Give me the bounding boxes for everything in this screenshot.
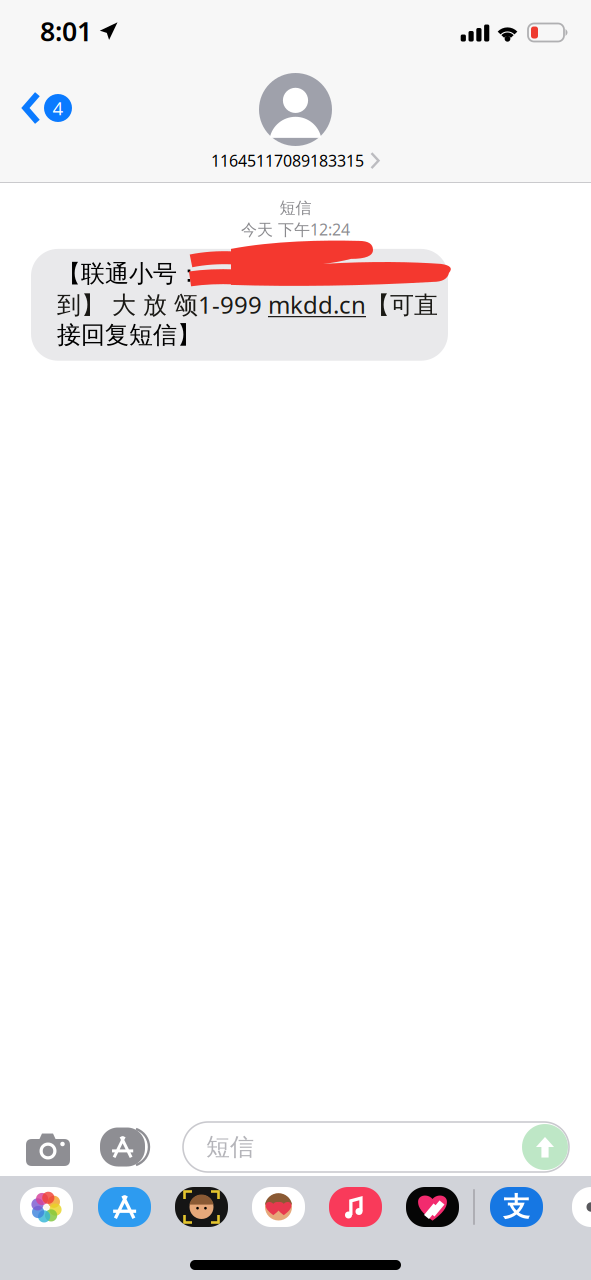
button[interactable]: More apps [543, 1187, 591, 1227]
staticText: 今天 下午12:24 [241, 219, 350, 240]
button[interactable]: Back [0, 81, 84, 135]
staticText: 8:01 [40, 13, 92, 49]
button[interactable]: Send [522, 1124, 569, 1170]
button[interactable]: Photos [20, 1187, 73, 1227]
button[interactable]: Apps [73, 1127, 158, 1166]
staticText: 11645117089183315 [211, 150, 364, 171]
button[interactable]: 11645117089183315 [211, 62, 380, 171]
button[interactable]: App Store [73, 1187, 151, 1227]
staticText: 【联通小号： [57, 259, 201, 288]
button[interactable]: Music [305, 1187, 382, 1227]
staticText: 短信 [206, 1132, 254, 1162]
button[interactable]: Memoji [151, 1187, 228, 1227]
staticText: 接回复短信】 [57, 320, 201, 350]
staticText: 短信 [279, 198, 311, 218]
staticText: 支 [503, 1191, 530, 1223]
button[interactable]: Memoji Stickers [228, 1187, 305, 1227]
button[interactable]: Alipay [475, 1187, 543, 1227]
button[interactable]: Digital Touch [382, 1187, 459, 1227]
staticText: 到】 大 放 颂1-999 mkdd.cn【可直 [57, 288, 438, 320]
button[interactable]: Camera [23, 1128, 73, 1166]
staticText: 4 [52, 96, 63, 120]
